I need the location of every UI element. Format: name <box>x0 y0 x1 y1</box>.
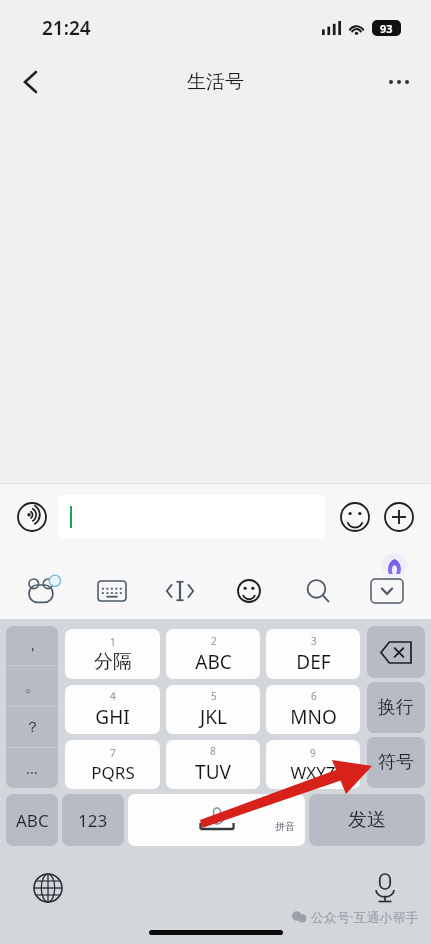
button[interactable]: Back <box>8 60 52 104</box>
button[interactable]: Voice input <box>10 495 54 539</box>
button[interactable]: More options <box>377 60 421 104</box>
staticText: ， <box>25 636 40 655</box>
staticText: 8 <box>210 744 216 758</box>
button[interactable]: ， <box>6 626 58 788</box>
staticText: 。 <box>25 677 40 696</box>
staticText: TUV <box>195 759 231 785</box>
staticText: ABC <box>16 809 49 832</box>
staticText: MNO <box>290 704 337 730</box>
staticText: 3 <box>311 634 317 648</box>
staticText: 分隔 <box>94 650 132 674</box>
button[interactable]: 123 <box>62 794 124 846</box>
staticText: 符号 <box>378 751 414 774</box>
button[interactable]: 换行 <box>367 682 425 733</box>
button[interactable]: 3 <box>266 629 360 679</box>
staticText: PQRS <box>91 761 135 784</box>
button[interactable]: Cursor move <box>146 569 214 613</box>
staticText: GHI <box>95 704 130 730</box>
staticText: 公众号·互通小帮手 <box>311 908 419 926</box>
button[interactable]: 2 <box>166 629 260 679</box>
button[interactable]: 5 <box>166 685 260 734</box>
button[interactable]: Keyboard layout <box>78 569 146 613</box>
button[interactable]: Add attachment <box>377 495 421 539</box>
staticText: … <box>26 758 38 778</box>
button[interactable]: ABC <box>6 794 58 846</box>
staticText: 拼音 <box>275 820 295 833</box>
button[interactable]: 6 <box>266 685 360 734</box>
staticText: 1 <box>110 635 116 649</box>
button[interactable]: 符号 <box>367 737 425 788</box>
staticText: 9 <box>310 746 316 760</box>
button[interactable]: Hide keyboard <box>352 569 421 613</box>
button[interactable] <box>58 495 325 539</box>
button[interactable]: Voice typing <box>365 868 405 908</box>
staticText: 生活号 <box>187 70 244 94</box>
staticText: 21:24 <box>42 15 91 41</box>
button[interactable]: Emoji <box>333 495 377 539</box>
staticText: 6 <box>311 689 317 703</box>
button[interactable]: 发送 <box>309 794 425 846</box>
button[interactable]: Baidu input method <box>10 569 78 613</box>
staticText: ABC <box>195 649 232 675</box>
button[interactable]: Delete <box>367 626 425 678</box>
staticText: 发送 <box>348 808 386 832</box>
staticText: 2 <box>211 634 217 648</box>
staticText: 7 <box>110 746 116 760</box>
staticText: 123 <box>78 809 108 832</box>
staticText: 换行 <box>378 696 414 719</box>
button[interactable]: 1 <box>65 629 160 679</box>
button[interactable]: AI assistant <box>381 553 407 579</box>
staticText: 5 <box>211 689 217 703</box>
staticText: 93 <box>380 21 393 36</box>
button[interactable]: 8 <box>166 740 260 789</box>
staticText: 4 <box>110 689 116 703</box>
button[interactable]: 4 <box>65 685 160 734</box>
button[interactable]: Search <box>283 569 352 613</box>
staticText: JKL <box>200 704 227 730</box>
button[interactable]: 9 <box>266 740 360 789</box>
button[interactable]: Space <box>128 794 305 846</box>
staticText: WXYZ <box>290 761 336 784</box>
button[interactable]: 7 <box>65 740 160 789</box>
staticText: DEF <box>296 649 331 675</box>
staticText: ？ <box>25 718 40 737</box>
button[interactable]: Switch language <box>28 868 68 908</box>
button[interactable]: Emoji panel <box>214 569 283 613</box>
